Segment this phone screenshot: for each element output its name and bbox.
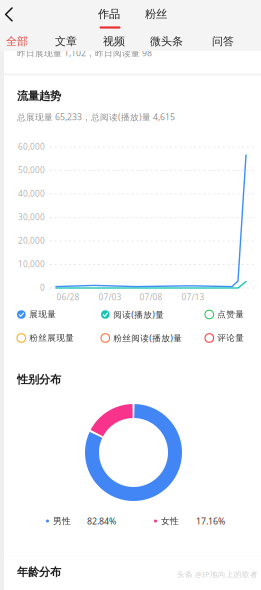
staticText: 17.16% [196,515,225,527]
button[interactable]: 微头条 [150,29,187,51]
button[interactable]: 评论量 [205,332,244,343]
staticText: 粉丝 [145,7,167,21]
staticText: 女性 [161,515,179,527]
staticText: 微头条 [150,34,183,48]
staticText: 总展现量 65,233，总阅读(播放)量 4,615 [17,111,175,123]
staticText: 全部 [6,34,28,48]
button[interactable]: 点赞量 [205,309,244,320]
button[interactable]: 粉丝展现量 [17,332,74,343]
staticText: 男性 [53,515,71,527]
button[interactable]: 阅读(播放)量 [101,309,164,320]
staticText: 82.84% [87,515,116,527]
staticText: 视频 [103,34,125,48]
button[interactable]: 问答 [212,29,237,51]
staticText: 昨日展现量 1,102，昨日阅读量 98 [17,47,152,59]
staticText: 流量趋势 [17,89,61,103]
button[interactable]: 粉丝阅读(播放)量 [101,332,182,343]
staticText: 20,000 [18,235,45,246]
staticText: 阅读(播放)量 [113,309,164,320]
staticText: 点赞量 [217,309,244,320]
staticText: 07/13 [181,291,204,303]
staticText: 展现量 [29,309,56,320]
staticText: 粉丝阅读(播放)量 [113,332,182,344]
staticText: 问答 [212,34,234,48]
button[interactable]: 视频 [103,29,128,51]
staticText: 头条 @IP地向上的歌者 [177,569,258,579]
staticText: 50,000 [18,164,45,176]
button[interactable]: 男性 [46,515,116,527]
staticText: 性别分布 [17,372,61,387]
button[interactable]: 全部 [6,29,31,51]
staticText: 30,000 [18,211,45,223]
button[interactable]: 文章 [55,29,80,51]
staticText: 0 [40,282,45,293]
staticText: 文章 [55,34,77,48]
staticText: 06/28 [56,291,79,303]
staticText: 评论量 [217,333,244,343]
staticText: 40,000 [18,188,45,199]
staticText: 10,000 [18,258,45,270]
staticText: 07/03 [98,291,121,303]
staticText: 粉丝展现量 [29,333,74,343]
button[interactable]: Back [0,0,24,29]
button[interactable]: 展现量 [17,309,56,320]
staticText: 年龄分布 [17,565,61,579]
staticText: 作品 [98,7,120,21]
button[interactable]: 粉丝 [145,0,171,29]
button[interactable]: 女性 [154,515,225,527]
staticText: 07/08 [139,291,162,303]
button[interactable]: 作品 [98,0,124,29]
staticText: 60,000 [18,141,45,152]
